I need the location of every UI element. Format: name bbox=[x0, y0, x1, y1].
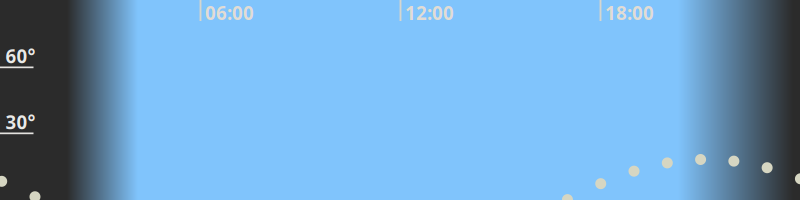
staticText: 06:00 bbox=[205, 0, 254, 25]
staticText: 12:00 bbox=[405, 0, 454, 25]
staticText: 60° bbox=[6, 43, 36, 68]
staticText: 18:00 bbox=[605, 0, 654, 25]
staticText: 30° bbox=[6, 109, 36, 134]
